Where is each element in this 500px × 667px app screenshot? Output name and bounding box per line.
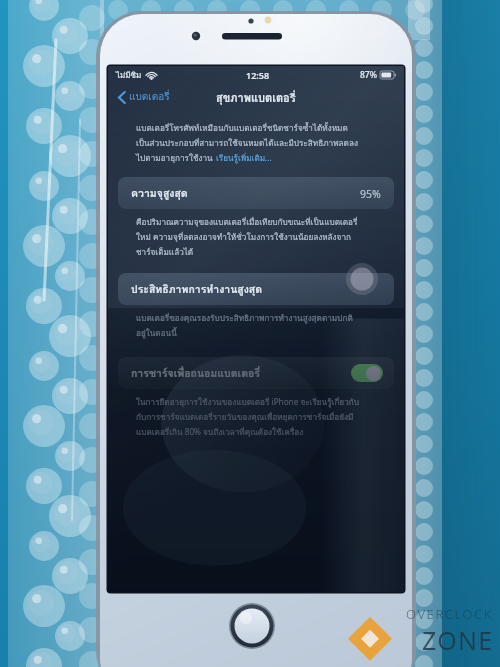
button[interactable]: Optimized Battery Charging, on	[351, 364, 383, 382]
staticText: ในการยืดอายุการใช้งานของแบตเตอรี่ iPhone…	[136, 396, 359, 409]
button[interactable]: การชาร์จเพื่อถนอมแบตเตอรี่	[118, 357, 394, 389]
staticText: แบตเตอรี่	[129, 89, 170, 105]
staticText: OVERCLOCK	[406, 605, 494, 623]
staticText: ไม่มีซิม	[116, 69, 142, 82]
staticText: คือปริมาณความจุของแบตเตอรี่เมื่อเทียบกับ…	[136, 216, 358, 229]
staticText: อยู่ในตอนนี้	[136, 327, 177, 340]
staticText: เป็นส่วนประกอบที่สามารถใช้จนหมดได้และมีป…	[136, 137, 358, 150]
button[interactable]: ประสิทธิภาพการทำงานสูงสุด	[118, 273, 394, 305]
staticText: ใหม่ ความจุที่ลดลงอาจทำให้ชั่วโมงการใช้ง…	[136, 231, 351, 244]
staticText: ความจุสูงสุด	[131, 185, 188, 202]
staticText: ประสิทธิภาพการทำงานสูงสุด	[131, 281, 263, 298]
staticText: ชาร์จเต็มแล้วได้	[136, 246, 194, 259]
staticText: กับการชาร์จแบตเตอรี่รายวันของคุณเพื่อหยุ…	[136, 411, 354, 424]
staticText: การชาร์จเพื่อถนอมแบตเตอรี่	[131, 365, 260, 382]
staticText: สุขภาพแบตเตอรี่	[216, 89, 296, 106]
staticText: ZONE	[422, 623, 494, 657]
staticText: 95%	[360, 187, 381, 201]
button[interactable]: ความจุสูงสุด	[118, 177, 394, 209]
staticText: แบตเตอรี่โทรศัพท์เหมือนกับแบตเตอรี่ชนิดช…	[136, 122, 348, 135]
staticText: 12:58	[246, 69, 270, 81]
button[interactable]: เรียนรู้เพิ่มเติม...	[216, 152, 272, 165]
staticText: แบตเตอรี่ของคุณรองรับประสิทธิภาพการทำงาน…	[136, 312, 353, 325]
staticText: แบตเตอรี่เกิน 80% จนถึงเวลาที่คุณต้องใช้…	[136, 426, 304, 439]
staticText: เรียนรู้เพิ่มเติม...	[216, 152, 272, 165]
staticText: 87%	[360, 69, 377, 81]
button[interactable]: แบตเตอรี่	[115, 86, 173, 108]
staticText: ไปตามอายุการใช้งาน	[136, 152, 213, 165]
